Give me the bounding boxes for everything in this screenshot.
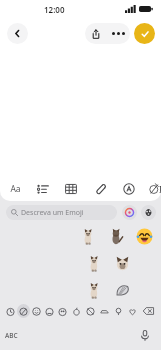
button[interactable]: Travel [83, 304, 97, 318]
button[interactable]: Activity [69, 304, 83, 318]
button[interactable]: Delete [139, 304, 157, 318]
button[interactable] [105, 225, 127, 247]
button[interactable]: Animals [43, 304, 56, 318]
staticText: ABC [5, 331, 18, 340]
button[interactable] [111, 252, 133, 274]
button[interactable]: Back [7, 23, 28, 44]
button[interactable] [133, 225, 155, 247]
button[interactable]: Share [85, 23, 106, 44]
button[interactable]: Image Playground [122, 205, 137, 220]
button[interactable]: People [30, 304, 43, 318]
button[interactable]: Attach [91, 180, 108, 197]
button[interactable]: Recent [4, 304, 17, 318]
button[interactable] [77, 225, 99, 247]
button[interactable]: Objects [97, 304, 111, 318]
button[interactable]: Text style [7, 180, 24, 197]
button[interactable] [83, 252, 105, 274]
button[interactable]: Flags [125, 304, 139, 318]
button[interactable]: Markup [149, 180, 159, 197]
staticText: 12:00 [44, 4, 65, 15]
button[interactable]: Table [62, 180, 79, 197]
button[interactable]: Descreva um Emoji [6, 205, 117, 220]
button[interactable]: Symbols [111, 304, 125, 318]
button[interactable] [111, 279, 133, 301]
button[interactable]: Dictation [137, 327, 153, 343]
staticText: Aa [10, 183, 21, 195]
button[interactable]: Stickers [141, 205, 156, 220]
button[interactable] [83, 279, 105, 301]
button[interactable]: Food [56, 304, 69, 318]
button[interactable]: List [34, 180, 51, 197]
button[interactable]: Pen [120, 180, 137, 197]
button[interactable]: Done [134, 23, 155, 44]
button[interactable]: Smileys [17, 304, 30, 318]
button[interactable]: More options [106, 23, 130, 44]
staticText: Descreva um Emoji [21, 208, 84, 218]
button[interactable]: ABC [5, 327, 29, 343]
